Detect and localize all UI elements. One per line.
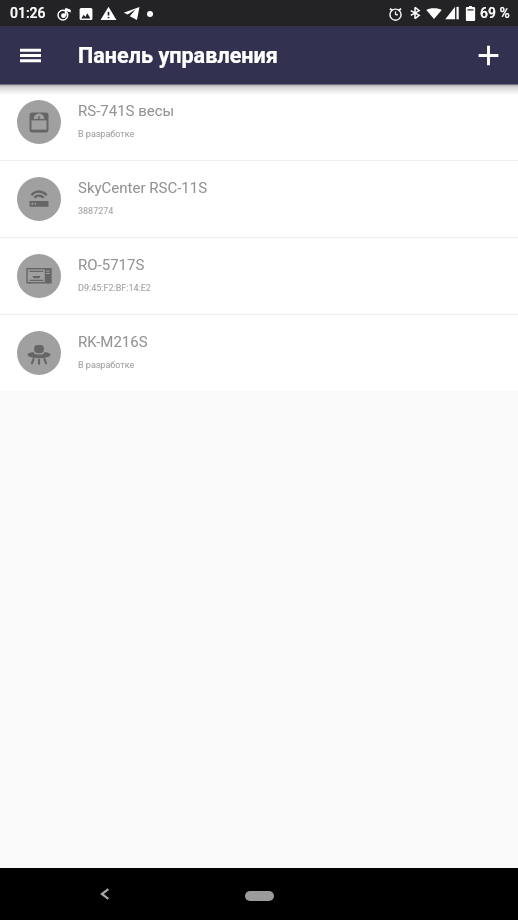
button[interactable]: Back <box>85 874 125 914</box>
staticText: SkyCenter RSC-11S <box>78 179 208 197</box>
staticText: RK-M216S <box>78 333 148 351</box>
staticText: D9:45:F2:BF:14:E2 <box>78 283 151 294</box>
button[interactable]: Home <box>245 891 274 901</box>
button[interactable]: SkyCenter RSC-11S <box>0 161 518 237</box>
staticText: RS-741S весы <box>78 102 175 120</box>
button[interactable]: RK-M216S <box>0 315 518 391</box>
staticText: 3887274 <box>78 206 114 217</box>
staticText: 69 % <box>480 5 510 21</box>
staticText: 01:26 <box>10 5 46 21</box>
button[interactable]: RO-5717S <box>0 238 518 314</box>
staticText: В разработке <box>78 360 135 371</box>
staticText: В разработке <box>78 129 135 140</box>
staticText: Панель управления <box>78 43 278 68</box>
button[interactable]: RS-741S весы <box>0 84 518 160</box>
button[interactable]: Open navigation menu <box>7 32 54 79</box>
staticText: RO-5717S <box>78 256 145 274</box>
button[interactable]: Add device <box>465 32 512 79</box>
